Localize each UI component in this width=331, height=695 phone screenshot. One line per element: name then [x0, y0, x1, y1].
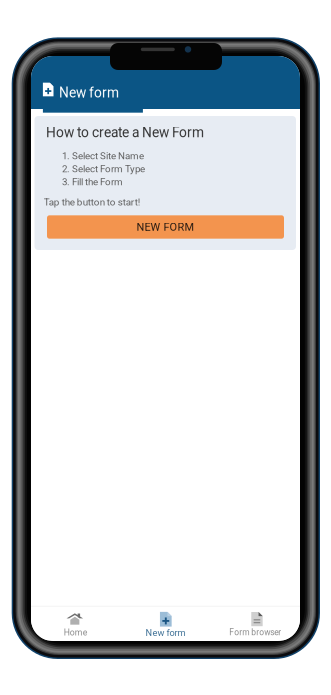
button[interactable]: New form — [43, 83, 143, 113]
staticText: How to create a New Form — [46, 124, 204, 141]
staticText: Home — [64, 627, 88, 638]
button[interactable]: Home — [31, 606, 121, 640]
staticText: 2. Select Form Type — [62, 163, 145, 175]
staticText: New form — [145, 627, 185, 638]
staticText: Form browser — [229, 627, 281, 637]
button[interactable]: Form browser — [210, 606, 300, 640]
staticText: NEW FORM — [136, 221, 194, 233]
staticText: 3. Fill the Form — [62, 176, 123, 188]
button[interactable]: NEW FORM — [47, 215, 284, 239]
staticText: 1. Select Site Name — [62, 150, 144, 162]
button[interactable]: New form — [121, 606, 210, 640]
staticText: New form — [59, 85, 119, 101]
staticText: Tap the button to start! — [44, 196, 141, 208]
